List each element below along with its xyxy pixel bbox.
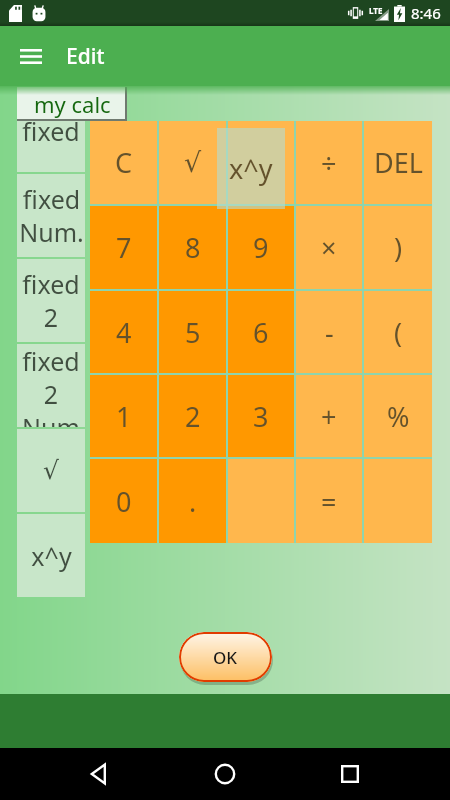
button[interactable]: 7 <box>90 206 157 289</box>
staticText: 1 <box>116 398 132 435</box>
staticText: OK <box>213 646 238 669</box>
staticText: fixed 2 <box>22 267 80 334</box>
button[interactable]: Menu <box>11 36 51 76</box>
button[interactable]: ( <box>364 291 432 373</box>
staticText: fixed 2 Num <box>22 344 80 427</box>
staticText: ÷ <box>321 144 337 181</box>
button[interactable]: DEL <box>364 121 432 204</box>
button[interactable]: x^y <box>17 514 85 597</box>
button[interactable]: my calc <box>17 87 127 121</box>
button[interactable]: √ <box>159 121 226 204</box>
staticText: fixed Num. <box>19 182 84 249</box>
button[interactable]: ) <box>364 206 432 289</box>
button[interactable]: fixed Num. <box>17 174 85 257</box>
staticText: 9 <box>253 229 269 266</box>
button[interactable]: ÷ <box>296 121 362 204</box>
button[interactable] <box>228 121 294 204</box>
button[interactable]: 3 <box>228 375 294 457</box>
staticText: C <box>115 144 133 181</box>
staticText: + <box>321 398 337 435</box>
staticText: x^y <box>229 150 273 187</box>
button[interactable]: - <box>296 291 362 373</box>
staticText: fixed <box>22 121 80 148</box>
staticText: 0 <box>116 483 132 520</box>
button[interactable]: 9 <box>228 206 294 289</box>
staticText: . <box>189 483 197 520</box>
staticText: ( <box>394 314 403 351</box>
staticText: √ <box>43 456 59 485</box>
button[interactable]: 0 <box>90 459 157 543</box>
button[interactable]: % <box>364 375 432 457</box>
staticText: ) <box>394 229 403 266</box>
staticText: 5 <box>185 314 201 351</box>
button[interactable]: × <box>296 206 362 289</box>
staticText: x^y <box>31 539 72 573</box>
button[interactable]: fixed 2 Num <box>17 344 85 427</box>
staticText: Edit <box>66 42 105 71</box>
button[interactable]: √ <box>17 429 85 512</box>
button[interactable]: 1 <box>90 375 157 457</box>
button[interactable]: 4 <box>90 291 157 373</box>
button[interactable]: C <box>90 121 157 204</box>
staticText: 8:46 <box>411 3 441 23</box>
staticText: - <box>325 314 334 351</box>
button[interactable]: 8 <box>159 206 226 289</box>
button[interactable]: fixed <box>17 121 85 172</box>
staticText: 3 <box>253 398 269 435</box>
staticText: 6 <box>253 314 269 351</box>
staticText: 8 <box>185 229 201 266</box>
staticText: √ <box>184 147 202 178</box>
button[interactable]: = <box>296 459 362 543</box>
staticText: 2 <box>185 398 201 435</box>
button[interactable]: OK <box>179 632 272 682</box>
button[interactable]: fixed 2 <box>17 259 85 342</box>
staticText: my calc <box>34 89 111 119</box>
staticText: % <box>387 398 410 435</box>
button[interactable]: 2 <box>159 375 226 457</box>
staticText: LTE <box>369 5 383 16</box>
staticText: 7 <box>116 229 132 266</box>
staticText: 4 <box>116 314 132 351</box>
button[interactable]: . <box>159 459 226 543</box>
button[interactable]: 6 <box>228 291 294 373</box>
staticText: DEL <box>374 144 423 181</box>
staticText: × <box>321 229 337 266</box>
button[interactable]: + <box>296 375 362 457</box>
staticText: = <box>321 483 337 520</box>
button[interactable]: 5 <box>159 291 226 373</box>
